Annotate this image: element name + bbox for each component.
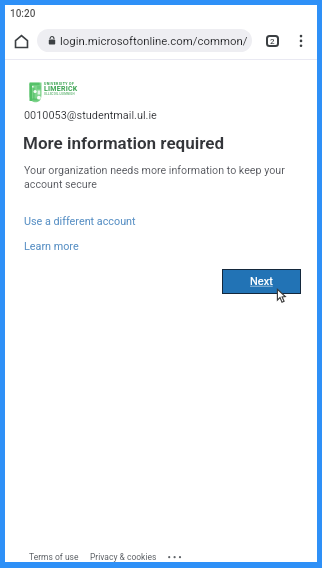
staticText: OLLSCOIL LUIMNIGH: [44, 92, 75, 95]
button[interactable]: More options: [289, 29, 313, 53]
button[interactable]: Terms of use: [29, 552, 79, 562]
staticText: Your organization needs more information…: [24, 164, 292, 190]
button[interactable]: Tabs: [260, 29, 284, 53]
button[interactable]: More: [164, 551, 182, 565]
staticText: 0010053@studentmail.ul.ie: [24, 109, 157, 122]
button[interactable]: Home: [9, 29, 33, 53]
staticText: 10:20: [10, 8, 36, 20]
staticText: 2: [270, 37, 275, 46]
staticText: More information required: [23, 133, 224, 153]
button[interactable]: Learn more: [24, 240, 79, 253]
button[interactable]: Privacy & cookies: [90, 552, 157, 562]
staticText: UNIVERSITY OF: [44, 82, 75, 86]
button[interactable]: Next: [223, 270, 300, 293]
button[interactable]: Use a different account: [24, 215, 136, 228]
staticText: LIMERICK: [44, 85, 78, 93]
button[interactable]: login.microsoftonline.com/common/: [37, 29, 252, 52]
staticText: login.microsoftonline.com/common/: [60, 34, 248, 47]
staticText: Next: [250, 275, 273, 288]
